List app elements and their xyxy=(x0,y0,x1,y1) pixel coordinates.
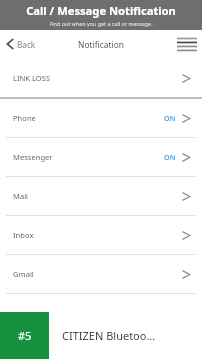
staticText: Inbox xyxy=(13,230,34,240)
staticText: Gmail xyxy=(13,269,34,279)
staticText: Notification xyxy=(78,39,124,50)
button[interactable]: Menu xyxy=(172,31,202,58)
button[interactable]: Phone xyxy=(0,99,202,137)
staticText: LINK LOSS xyxy=(13,73,51,83)
staticText: Back xyxy=(17,39,36,50)
staticText: CITIZEN Bluetoo... xyxy=(62,328,156,343)
button[interactable]: LINK LOSS xyxy=(0,59,202,97)
button[interactable]: Mail xyxy=(0,177,202,215)
button[interactable]: Inbox xyxy=(0,216,202,254)
button[interactable]: Gmail xyxy=(0,255,202,293)
staticText: ON xyxy=(164,152,176,162)
staticText: Phone xyxy=(13,113,36,123)
staticText: Call / Message Notification xyxy=(26,3,176,18)
staticText: Messenger xyxy=(13,152,53,162)
button[interactable]: #5 xyxy=(0,312,202,359)
staticText: #5 xyxy=(18,328,32,343)
staticText: Mail xyxy=(13,191,29,201)
staticText: Find out when you get a call or message. xyxy=(49,20,153,27)
staticText: ON xyxy=(164,113,176,123)
button[interactable]: Back xyxy=(0,33,44,55)
button[interactable]: Messenger xyxy=(0,138,202,176)
